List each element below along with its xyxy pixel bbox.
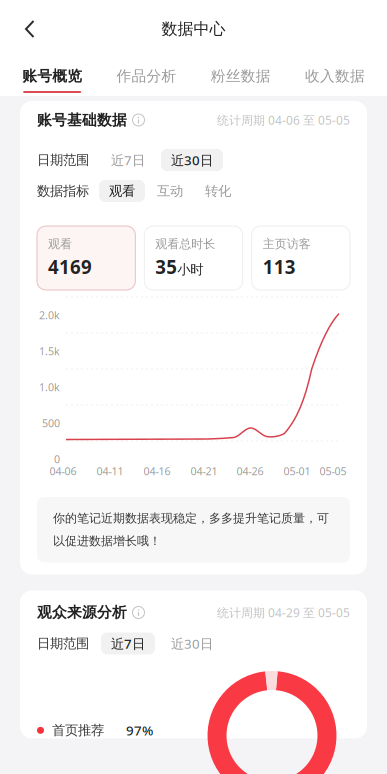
button[interactable]: 观看 — [37, 226, 135, 290]
staticText: 1.5k — [39, 344, 60, 358]
staticText: 账号概览 — [22, 67, 82, 85]
button[interactable]: 近7日 — [101, 632, 155, 654]
staticText: 作品分析 — [116, 67, 176, 85]
button[interactable]: 收入数据 — [288, 53, 382, 96]
staticText: 观看 — [48, 237, 72, 251]
staticText: 97% — [126, 721, 153, 739]
staticText: 你的笔记近期数据表现稳定，多多提升笔记质量，可 — [53, 511, 329, 526]
staticText: 2.0k — [39, 308, 60, 322]
staticText: 主页访客 — [263, 237, 311, 251]
staticText: 账号基础数据 — [37, 111, 127, 129]
button[interactable]: 互动 — [147, 180, 193, 202]
button[interactable]: 观看总时长 — [144, 226, 243, 290]
staticText: 近30日 — [171, 635, 213, 652]
staticText: 05-01 — [283, 464, 310, 478]
button[interactable]: 近30日 — [161, 632, 223, 654]
button[interactable]: 观看 — [99, 180, 145, 202]
staticText: 04-06 — [49, 464, 76, 478]
staticText: 113 — [263, 254, 296, 279]
staticText: 04-11 — [96, 464, 123, 478]
staticText: 04-21 — [190, 464, 217, 478]
staticText: 1.0k — [39, 380, 60, 394]
staticText: 观众来源分析 — [37, 603, 127, 621]
button[interactable]: 作品分析 — [99, 53, 193, 96]
staticText: 统计周期 04-06 至 05-05 — [217, 112, 350, 128]
staticText: 近7日 — [111, 151, 145, 169]
button[interactable]: 主页访客 — [252, 226, 350, 290]
staticText: 数据指标 — [37, 183, 89, 199]
button[interactable]: 近30日 — [161, 149, 223, 171]
button[interactable]: 转化 — [195, 180, 241, 202]
staticText: 转化 — [205, 183, 231, 199]
staticText: 首页推荐 — [52, 722, 104, 739]
staticText: 以促进数据增长哦！ — [53, 534, 161, 548]
staticText: 互动 — [157, 183, 183, 199]
staticText: 日期范围 — [37, 635, 89, 652]
staticText: 4169 — [48, 254, 92, 279]
staticText: 数据中心 — [161, 19, 225, 39]
staticText: 近30日 — [171, 151, 213, 169]
button[interactable]: 粉丝数据 — [193, 53, 288, 96]
staticText: 05-05 — [319, 464, 346, 478]
staticText: 0 — [54, 452, 60, 466]
staticText: 收入数据 — [305, 67, 365, 85]
staticText: 近7日 — [111, 635, 145, 652]
button[interactable]: 账号概览 — [5, 53, 99, 96]
staticText: 粉丝数据 — [211, 67, 271, 85]
staticText: 观看 — [109, 183, 135, 199]
staticText: 统计周期 04-29 至 05-05 — [217, 604, 350, 620]
staticText: 日期范围 — [37, 152, 89, 168]
staticText: 观看总时长 — [155, 237, 215, 251]
staticText: 35 — [155, 254, 177, 279]
staticText: 04-26 — [236, 464, 263, 478]
button[interactable]: Back — [8, 7, 52, 51]
button[interactable]: 近7日 — [101, 149, 155, 171]
staticText: 500 — [42, 416, 60, 430]
staticText: 04-16 — [143, 464, 170, 478]
staticText: 小时 — [177, 261, 203, 278]
